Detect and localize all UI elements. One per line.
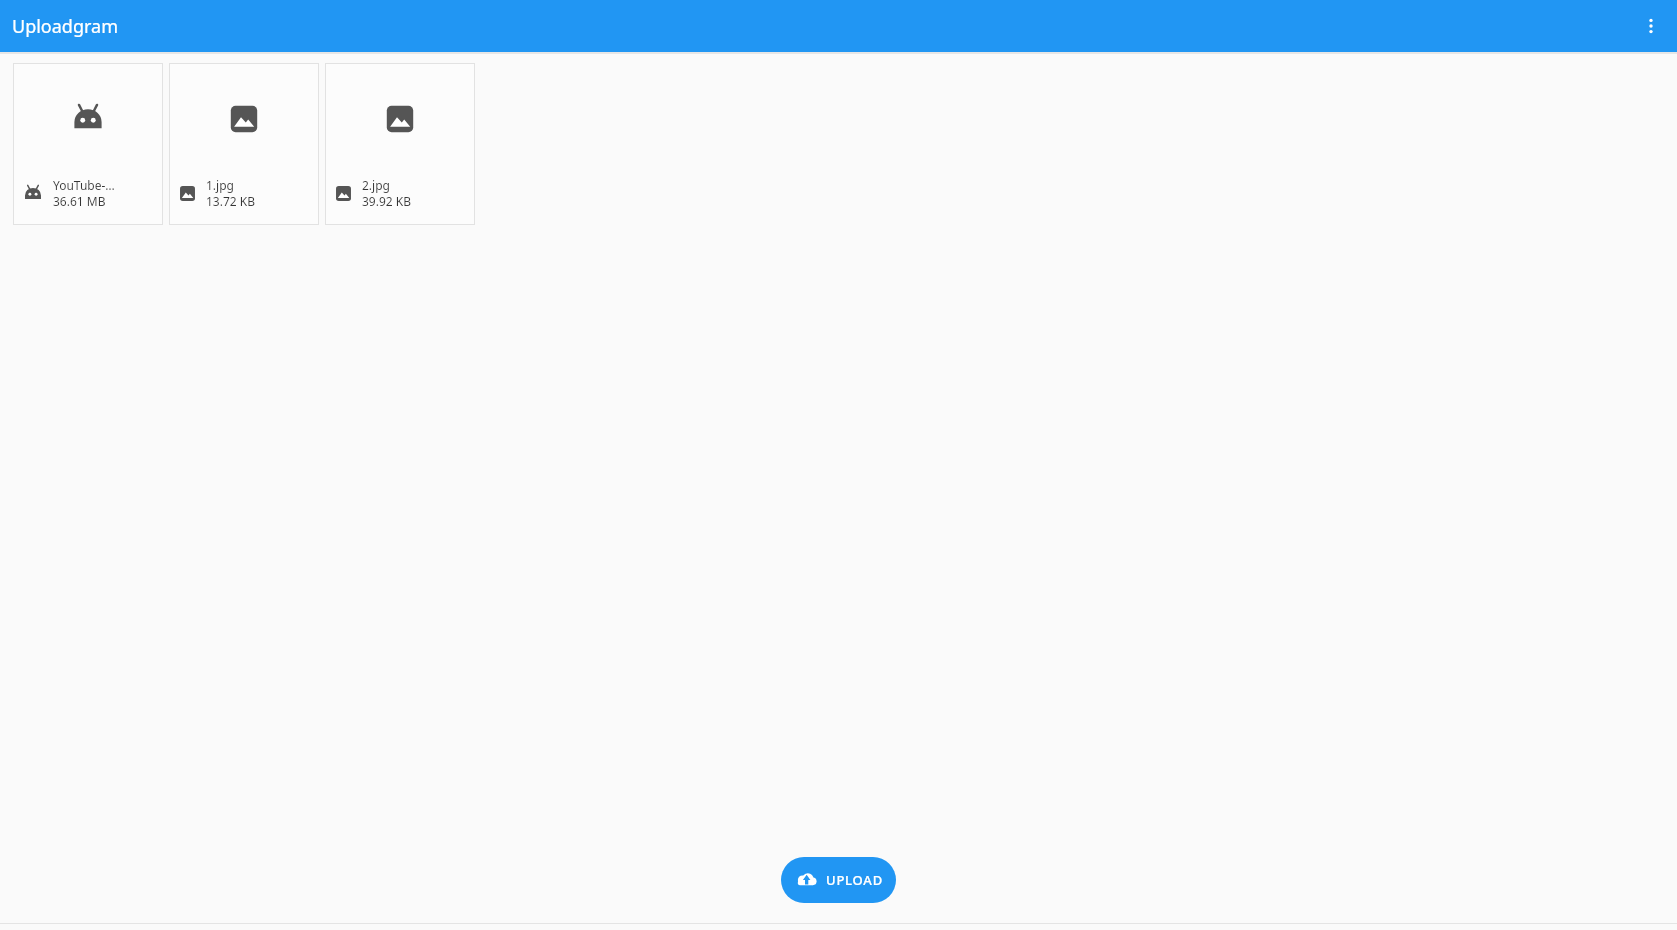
staticText: YouTube-…: [53, 177, 115, 193]
staticText: 2.jpg: [362, 177, 390, 193]
button[interactable]: 1.jpg: [169, 63, 319, 225]
staticText: 36.61 MB: [53, 193, 106, 209]
staticText: 39.92 KB: [362, 193, 412, 209]
staticText: 13.72 KB: [206, 193, 256, 209]
button[interactable]: 2.jpg: [325, 63, 475, 225]
button[interactable]: YouTube-…: [13, 63, 163, 225]
button[interactable]: UPLOAD: [781, 857, 896, 903]
staticText: 1.jpg: [206, 177, 234, 193]
staticText: Uploadgram: [12, 14, 119, 39]
button[interactable]: More options: [1631, 6, 1671, 46]
staticText: UPLOAD: [826, 871, 883, 889]
